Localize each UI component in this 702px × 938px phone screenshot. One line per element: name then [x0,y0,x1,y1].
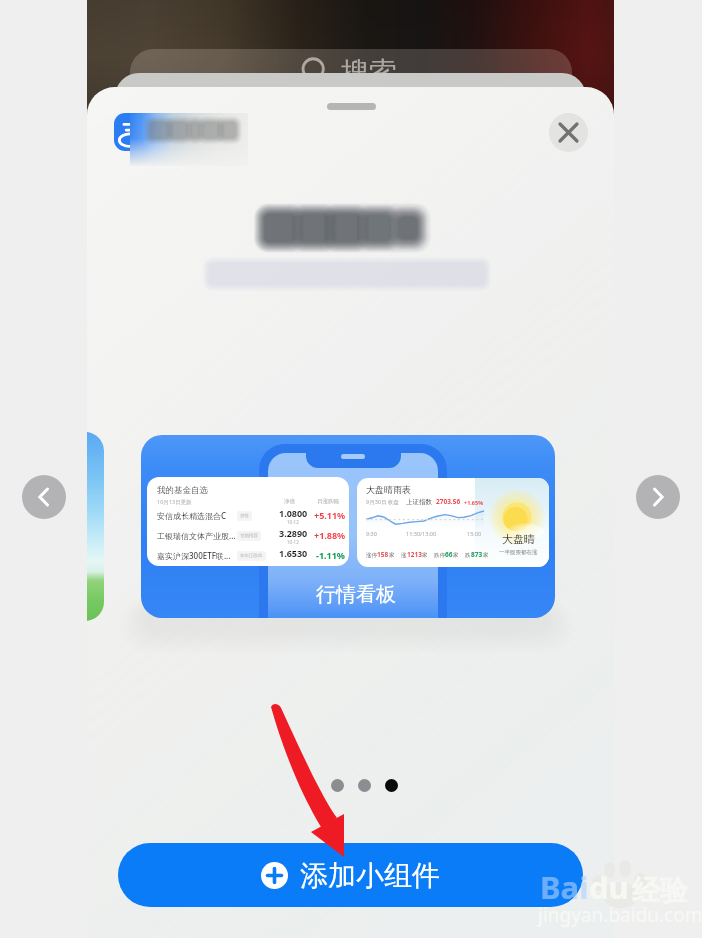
staticText: 1.6530 [279,547,308,559]
staticText: 3.2890 [279,527,308,539]
staticText: 净值 [284,498,295,505]
staticText: 跌 [465,552,471,559]
staticText: 嘉实沪深300ETF联... [157,550,231,561]
staticText: 873 [471,550,483,559]
staticText: 年年正收益 [240,553,263,559]
staticText: 持有 [240,513,249,519]
staticText: 1.0800 [279,507,308,519]
staticText: 1213 [407,550,422,559]
staticText: 158 [377,550,389,559]
staticText: 首购推荐 [240,533,258,539]
staticText: 涨停 [366,552,377,559]
button[interactable]: Next [636,475,680,519]
staticText: 9:30 [366,530,377,537]
staticText: -1.11% [316,549,345,561]
staticText: 搜索 [341,55,397,90]
staticText: 11:30/13:00 [406,530,437,537]
staticText: 工银瑞信文体产业股... [157,530,236,541]
staticText: 我的基金自选 [157,485,208,496]
staticText: 大盘晴雨表 [366,484,411,495]
button[interactable]: 添加小组件 [118,843,583,907]
staticText: +1.65% [464,499,484,506]
staticText: 上证指数 [406,498,432,506]
staticText: du [589,866,629,908]
staticText: jingyan.baidu.com [538,902,702,928]
staticText: 涨 [401,552,407,559]
staticText: 行情看板 [316,582,396,607]
staticText: 跌停 [434,552,445,559]
staticText: 家 [389,552,395,559]
staticText: 添加小组件 [300,858,440,893]
staticText: 经验 [632,873,688,908]
staticText: 大盘晴 [502,532,535,546]
staticText: 15:00 [467,530,482,537]
staticText: 2703.56 [436,497,461,506]
staticText: 10-12 [287,519,299,525]
staticText: +5.11% [314,509,346,521]
staticText: +1.88% [314,529,346,541]
staticText: 家 [453,552,459,559]
staticText: 10-12 [287,539,299,545]
button[interactable]: 行情看板 [141,435,555,618]
button[interactable]: Previous [22,475,66,519]
button[interactable]: Close [549,113,588,152]
staticText: 家 [422,552,428,559]
staticText: 家 [483,552,489,559]
staticText: 安信成长精选混合C [157,510,227,521]
staticText: 10月13日更新 [157,498,192,506]
staticText: 9月30日 收盘 [366,498,399,506]
staticText: Bai [540,866,589,908]
staticText: 日涨跌幅 [317,498,339,505]
staticText: 66 [445,550,453,559]
staticText: 一半股票都在涨 [499,549,538,556]
